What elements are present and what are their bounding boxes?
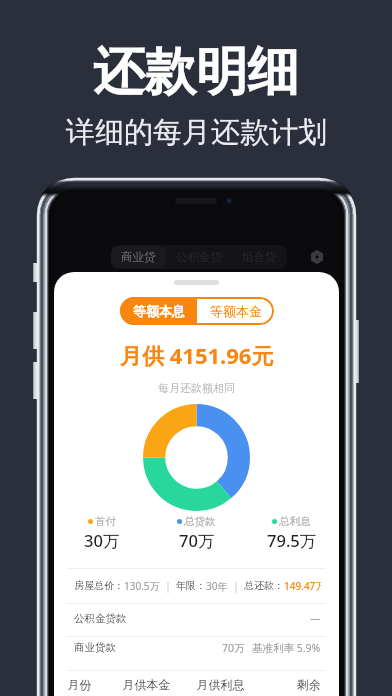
staticText: 房屋总价： <box>74 579 124 592</box>
staticText: 总利息 <box>279 515 311 528</box>
staticText: 首付 <box>95 515 116 528</box>
staticText: 剩余 <box>253 677 321 692</box>
staticText: 公积金贷款 <box>74 612 127 625</box>
staticText: 商业贷 <box>121 250 156 264</box>
staticText: 79.5万 <box>267 529 317 552</box>
staticText: 130.5万 <box>124 579 160 593</box>
staticText: 70万 <box>179 529 215 552</box>
button[interactable]: 公积金贷 <box>166 246 232 268</box>
staticText: 总贷款 <box>184 515 216 528</box>
staticText: 基准利率 5.9% <box>252 641 321 655</box>
staticText: | <box>160 579 176 593</box>
staticText: 商业贷款 <box>74 641 116 654</box>
staticText: 70万 <box>222 641 245 655</box>
staticText: 月份 <box>54 677 105 692</box>
staticText: 等额本息 <box>133 303 185 319</box>
staticText: | <box>228 579 244 593</box>
staticText: 年限： <box>176 579 206 592</box>
staticText: 月供本金 <box>105 677 188 692</box>
staticText: 公积金贷 <box>176 250 222 264</box>
button[interactable]: 商业贷 <box>111 246 166 268</box>
staticText: 30年 <box>206 579 228 593</box>
staticText: 还款明细 <box>93 39 299 104</box>
staticText: 等额本金 <box>210 303 262 319</box>
staticText: 月供利息 <box>188 677 253 692</box>
button[interactable]: 公积金贷款 <box>74 603 321 633</box>
staticText: 总还款： <box>244 579 284 592</box>
staticText: — <box>310 611 321 625</box>
staticText: 149.47万 <box>284 579 321 593</box>
staticText: 每月还款额相同 <box>158 381 235 395</box>
staticText: 组合贷 <box>242 250 277 264</box>
button[interactable]: 组合贷 <box>232 246 287 268</box>
button[interactable]: 设置 <box>306 246 328 268</box>
staticText: 详细的每月还款计划 <box>66 114 327 151</box>
button[interactable]: 等额本金 <box>197 297 274 325</box>
staticText: 30万 <box>84 529 120 552</box>
button[interactable]: 商业贷款 <box>74 636 321 659</box>
staticText: 月供 4151.96元 <box>120 340 274 370</box>
button[interactable]: 等额本息 <box>120 297 197 325</box>
